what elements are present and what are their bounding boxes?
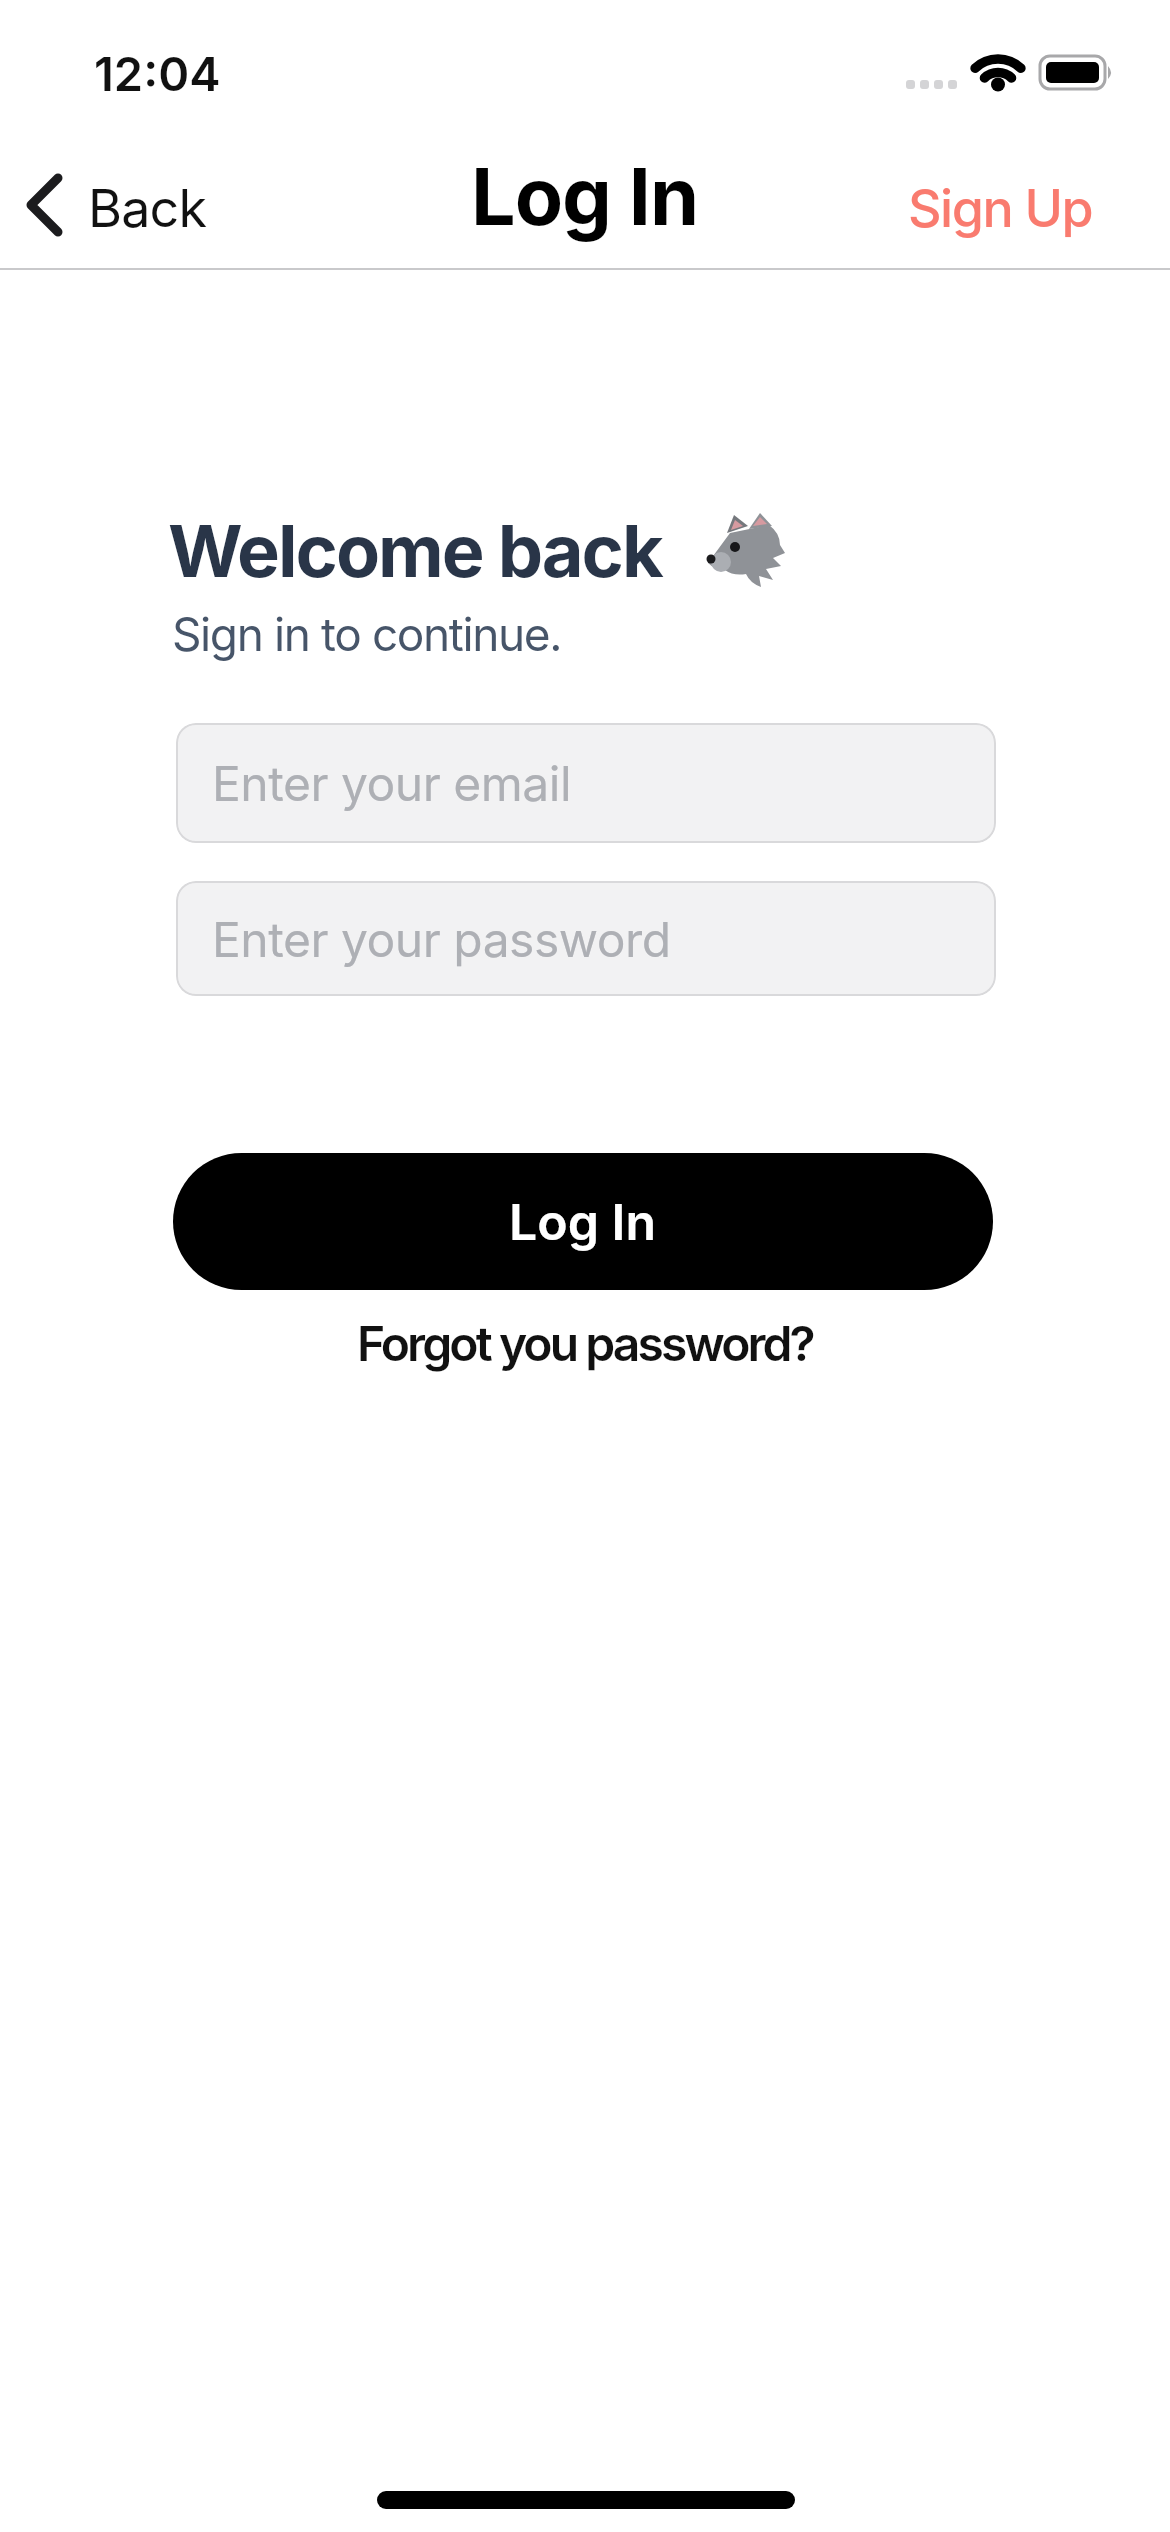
staticText: Log In bbox=[509, 1192, 657, 1252]
button[interactable]: Log In bbox=[173, 1153, 993, 1290]
staticText: Back bbox=[88, 177, 207, 240]
button[interactable]: Back bbox=[20, 160, 220, 250]
staticText: Enter your password bbox=[212, 910, 671, 968]
button[interactable]: Sign Up bbox=[895, 160, 1105, 250]
staticText: 12:04 bbox=[94, 45, 221, 102]
button[interactable]: Forgot you password? bbox=[357, 1314, 813, 1372]
staticText: Sign in to continue. bbox=[172, 606, 562, 662]
staticText: Sign Up bbox=[908, 177, 1093, 240]
button[interactable]: Enter your email bbox=[176, 723, 996, 843]
staticText: Enter your email bbox=[212, 754, 572, 812]
button[interactable]: Enter your password bbox=[176, 881, 996, 996]
staticText: Log In bbox=[471, 148, 699, 244]
staticText: Welcome back bbox=[168, 507, 662, 594]
